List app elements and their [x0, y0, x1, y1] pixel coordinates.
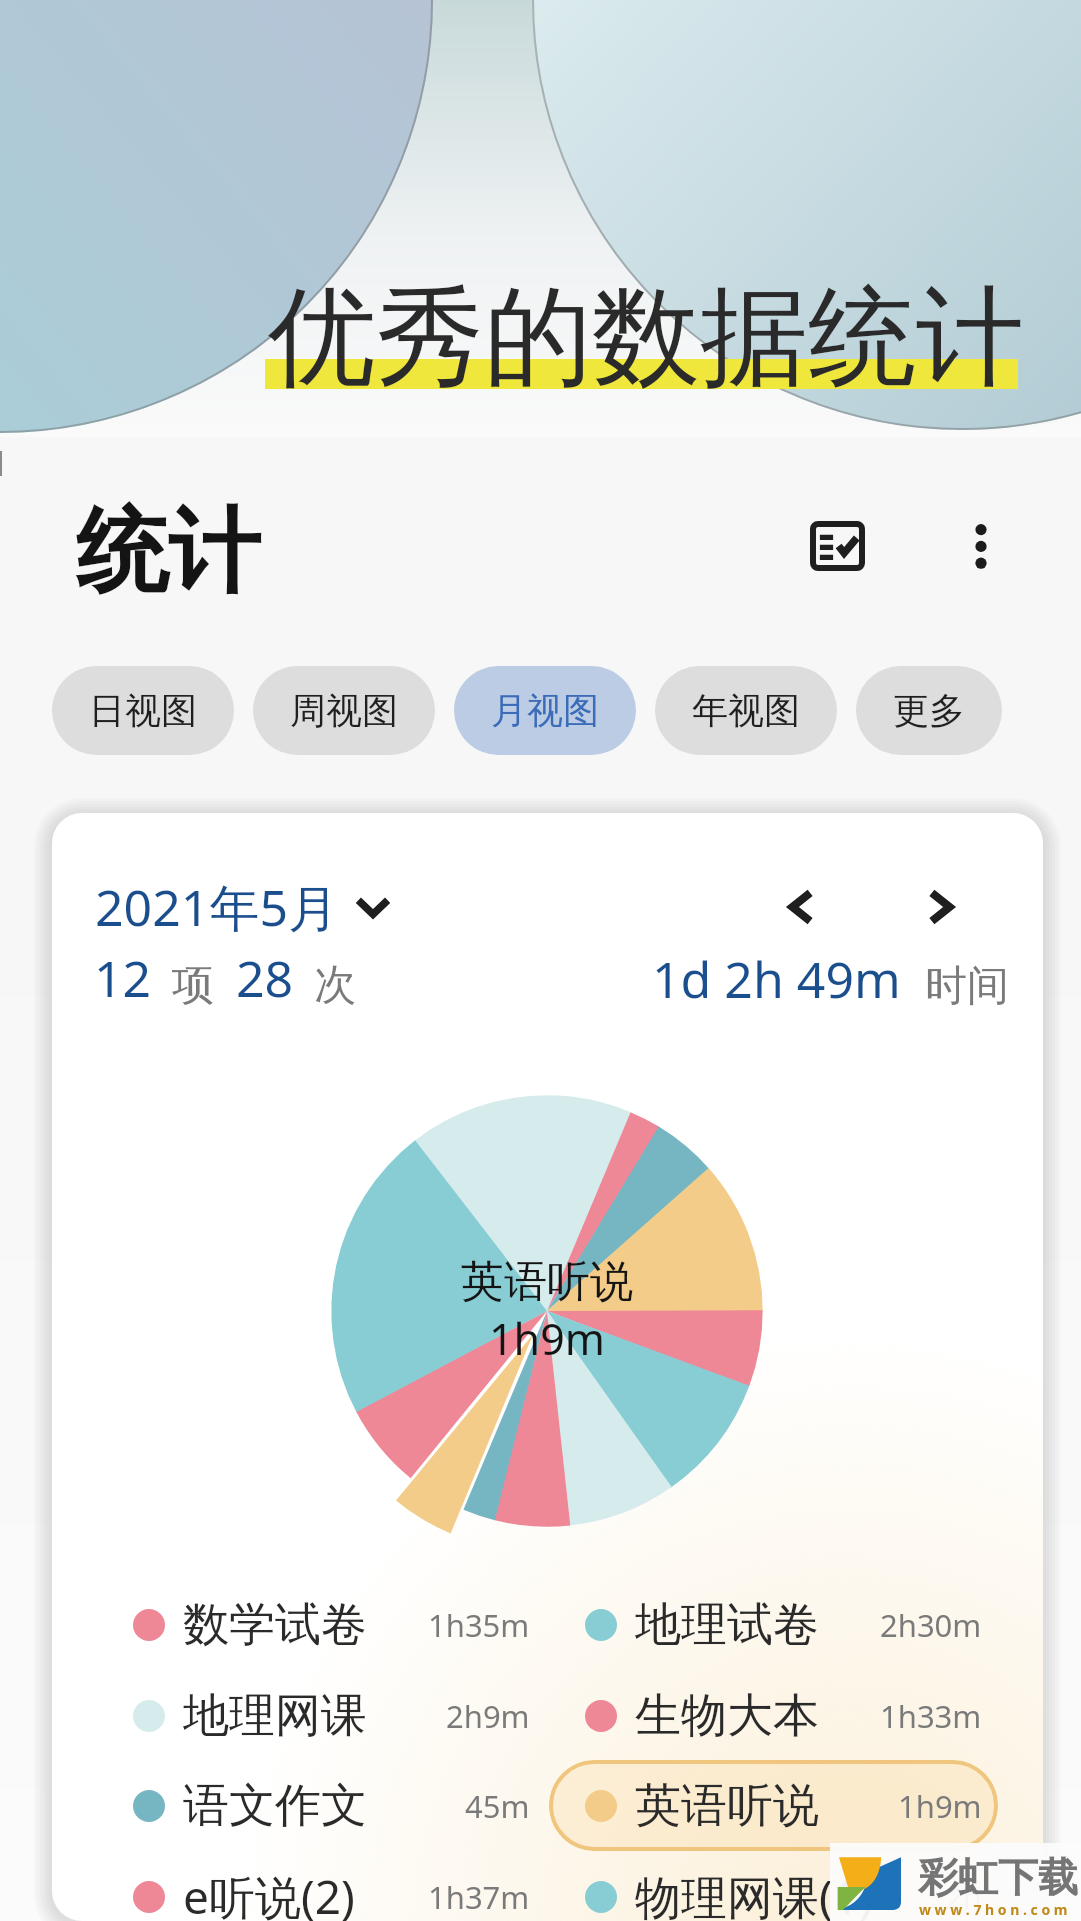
- staticText: 2h9m: [446, 1695, 530, 1737]
- staticText: 2h30m: [880, 1604, 982, 1646]
- button[interactable]: Checklist: [787, 496, 887, 596]
- staticText: 1h33m: [880, 1695, 982, 1737]
- button[interactable]: 生物大本: [549, 1670, 998, 1761]
- staticText: 12: [94, 944, 152, 1012]
- staticText: e听说(2): [183, 1865, 355, 1921]
- button[interactable]: 物理网课(1): [549, 1851, 998, 1921]
- button[interactable]: 周视图: [253, 666, 435, 755]
- staticText: 年视图: [692, 688, 800, 733]
- staticText: 时间: [925, 960, 1009, 1013]
- staticText: 生物大本: [635, 1687, 819, 1745]
- button[interactable]: 英语听说: [549, 1760, 998, 1851]
- staticText: 统计: [76, 494, 260, 610]
- button[interactable]: 数学试卷: [97, 1579, 546, 1670]
- staticText: 地理试卷: [635, 1596, 819, 1654]
- staticText: 数学试卷: [183, 1596, 367, 1654]
- button[interactable]: 地理网课: [97, 1670, 546, 1761]
- button[interactable]: 更多: [856, 666, 1002, 755]
- staticText: 1h9m: [898, 1785, 982, 1827]
- staticText: 项: [172, 959, 214, 1012]
- staticText: 优秀的数据统计: [268, 270, 1024, 406]
- button[interactable]: 地理试卷: [549, 1579, 998, 1670]
- button[interactable]: 日视图: [52, 666, 234, 755]
- staticText: 彩虹下载: [918, 1852, 1078, 1902]
- staticText: 28: [236, 944, 294, 1012]
- button[interactable]: More options: [931, 499, 1031, 599]
- staticText: 地理网课: [183, 1687, 367, 1745]
- staticText: 语文作文: [183, 1777, 367, 1835]
- staticText: w w w . 7 h o n . c o m: [919, 1900, 1068, 1919]
- staticText: 1d 2h 49m: [652, 945, 901, 1013]
- button[interactable]: 2021年5月: [95, 873, 390, 941]
- button[interactable]: 语文作文: [97, 1760, 546, 1851]
- staticText: 物理网课(1): [635, 1865, 873, 1921]
- staticText: 1h9m: [489, 1309, 605, 1368]
- staticText: 更多: [893, 688, 965, 733]
- staticText: 2021年5月: [95, 873, 338, 941]
- button[interactable]: e听说(2): [97, 1851, 546, 1921]
- button[interactable]: 月视图: [454, 666, 636, 755]
- staticText: 45m: [465, 1785, 530, 1827]
- staticText: 月视图: [491, 688, 599, 733]
- staticText: 1h37m: [428, 1876, 530, 1918]
- staticText: 英语听说: [461, 1255, 633, 1309]
- staticText: 周视图: [290, 688, 398, 733]
- button[interactable]: Previous month: [767, 873, 835, 941]
- button[interactable]: Next month: [907, 873, 975, 941]
- button[interactable]: 年视图: [655, 666, 837, 755]
- staticText: 次: [314, 959, 356, 1012]
- staticText: 2h: [945, 1876, 982, 1918]
- staticText: 1h35m: [428, 1604, 530, 1646]
- staticText: 日视图: [89, 688, 197, 733]
- staticText: 英语听说: [635, 1777, 819, 1835]
